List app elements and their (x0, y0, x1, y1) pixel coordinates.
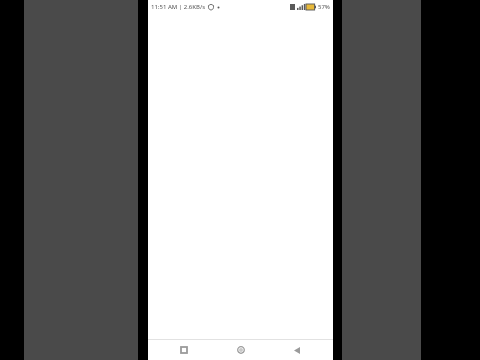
button[interactable]: Back (277, 340, 317, 360)
button[interactable]: Home (221, 340, 261, 360)
staticText: 11:51 AM | 2.6KB/s (151, 3, 206, 11)
button[interactable]: Recent apps (164, 340, 204, 360)
staticText: 57% (318, 3, 330, 11)
